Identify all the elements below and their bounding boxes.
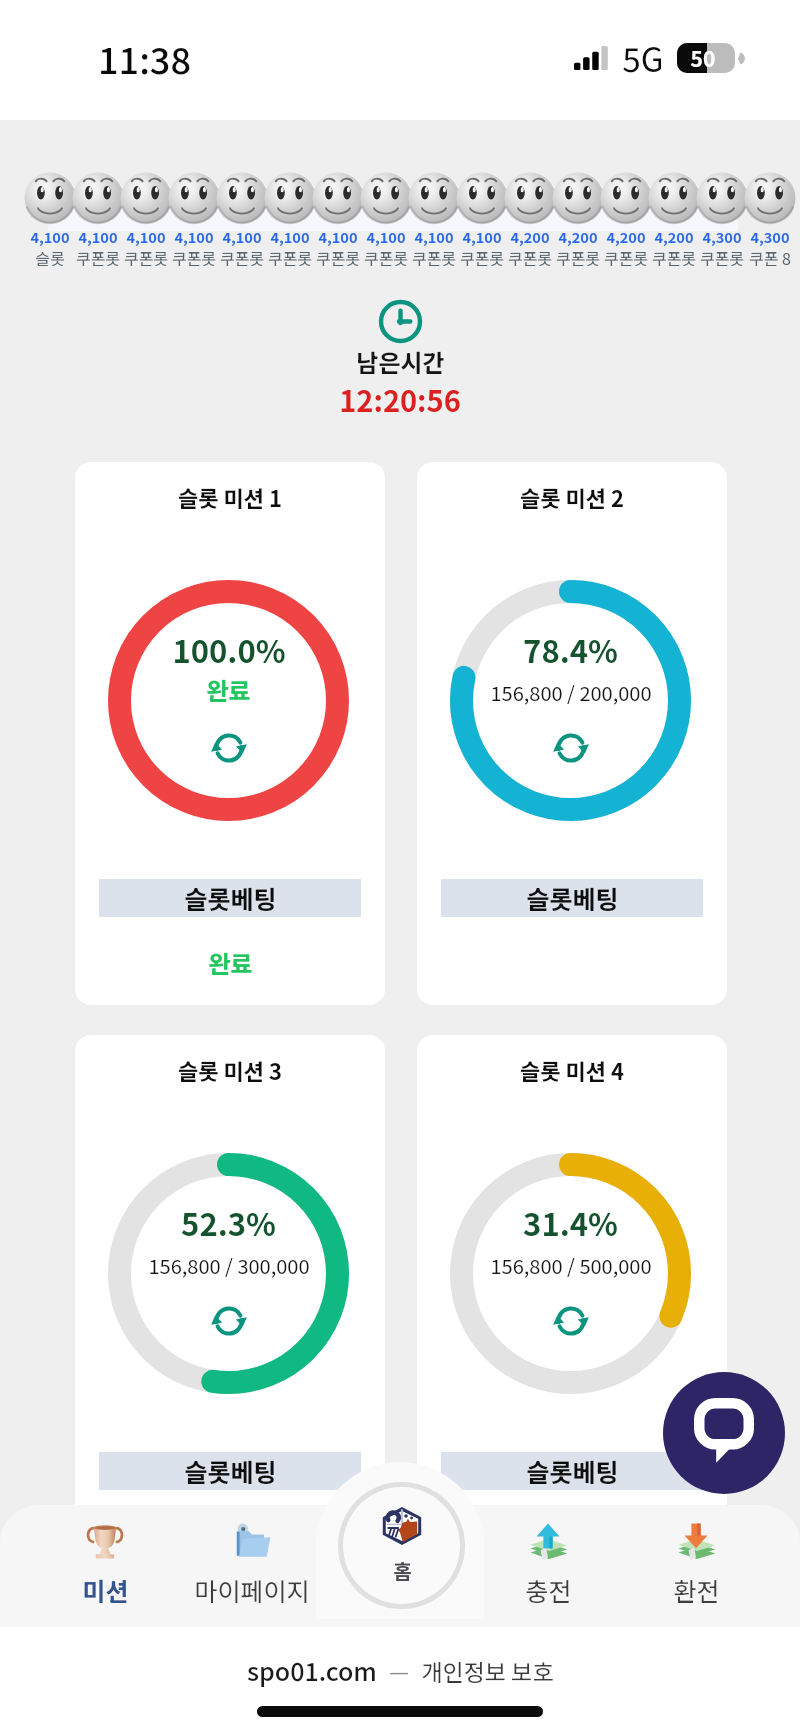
staticText: 쿠폰롯 bbox=[202, 246, 282, 269]
staticText: 31.4% bbox=[523, 1200, 618, 1245]
button[interactable]: 슬롯베팅 bbox=[441, 879, 703, 917]
button[interactable]: Refresh bbox=[550, 727, 592, 769]
staticText: 쿠폰롯 bbox=[490, 246, 570, 269]
staticText: 4,100 bbox=[250, 226, 330, 247]
staticText: 완료 bbox=[208, 945, 253, 980]
staticText: 156,800 / 200,000 bbox=[490, 678, 652, 707]
staticText: 충전 bbox=[525, 1572, 572, 1608]
staticText: 슬롯 bbox=[10, 246, 90, 269]
button[interactable]: Open chat bbox=[663, 1372, 785, 1494]
button[interactable]: 슬롯베팅 bbox=[99, 1452, 361, 1490]
staticText: 4,300 bbox=[682, 226, 762, 247]
button[interactable]: 미션 bbox=[35, 1518, 175, 1608]
staticText: 4,100 bbox=[442, 226, 522, 247]
staticText: 쿠폰롯 bbox=[250, 246, 330, 269]
button[interactable]: 홈 bbox=[316, 1462, 484, 1619]
staticText: 쿠폰롯 bbox=[442, 246, 522, 269]
staticText: 슬롯 미션 3 bbox=[178, 1054, 282, 1086]
staticText: 환전 bbox=[673, 1572, 720, 1608]
staticText: 쿠폰롯 bbox=[154, 246, 234, 269]
staticText: 156,800 / 300,000 bbox=[148, 1251, 310, 1280]
button[interactable]: 마이페이지 bbox=[182, 1518, 322, 1608]
staticText: 4,100 bbox=[10, 226, 90, 247]
button[interactable]: 슬롯 미션 4 bbox=[417, 1035, 727, 1578]
button[interactable]: Refresh bbox=[550, 1300, 592, 1342]
button[interactable]: 슬롯베팅 bbox=[99, 879, 361, 917]
staticText: 홈 bbox=[393, 1556, 412, 1585]
button[interactable]: 슬롯 미션 1 bbox=[75, 462, 385, 1005]
button[interactable]: 환전 bbox=[626, 1518, 766, 1608]
button[interactable]: Refresh bbox=[208, 1300, 250, 1342]
staticText: 4,100 bbox=[106, 226, 186, 247]
staticText: 슬롯 미션 2 bbox=[520, 481, 624, 513]
staticText: 12:20:56 bbox=[339, 378, 461, 420]
staticText: 남은시간 bbox=[356, 344, 445, 379]
staticText: 4,100 bbox=[202, 226, 282, 247]
staticText: 슬롯베팅 bbox=[184, 880, 277, 916]
staticText: 쿠폰롯 bbox=[106, 246, 186, 269]
staticText: 4,100 bbox=[346, 226, 426, 247]
staticText: 쿠폰롯 bbox=[586, 246, 666, 269]
button[interactable]: Refresh bbox=[208, 727, 250, 769]
staticText: 5G bbox=[622, 34, 664, 82]
staticText: 4,100 bbox=[154, 226, 234, 247]
staticText: 100.0% bbox=[172, 627, 286, 672]
staticText: 쿠폰 8 bbox=[730, 246, 800, 269]
staticText: 4,200 bbox=[490, 226, 570, 247]
staticText: 4,100 bbox=[298, 226, 378, 247]
staticText: 52.3% bbox=[181, 1200, 276, 1245]
staticText: 4,300 bbox=[730, 226, 800, 247]
staticText: 쿠폰롯 bbox=[538, 246, 618, 269]
staticText: 156,800 / 500,000 bbox=[490, 1251, 652, 1280]
button[interactable]: 충전 bbox=[478, 1518, 618, 1608]
staticText: 4,200 bbox=[586, 226, 666, 247]
staticText: spo01.com bbox=[247, 1652, 377, 1688]
staticText: 슬롯베팅 bbox=[526, 1453, 619, 1489]
button[interactable]: 슬롯베팅 bbox=[441, 1452, 703, 1490]
staticText: 쿠폰롯 bbox=[634, 246, 714, 269]
staticText: 슬롯 미션 4 bbox=[520, 1054, 624, 1086]
staticText: 50 bbox=[674, 43, 732, 73]
staticText: 슬롯 미션 1 bbox=[178, 481, 282, 513]
staticText: 슬롯베팅 bbox=[184, 1453, 277, 1489]
staticText: 슬롯베팅 bbox=[526, 880, 619, 916]
staticText: 미션 bbox=[82, 1572, 129, 1608]
staticText: 4,200 bbox=[538, 226, 618, 247]
staticText: 78.4% bbox=[523, 627, 618, 672]
staticText: 개인정보 보호 bbox=[421, 1654, 554, 1687]
staticText: 11:38 bbox=[98, 32, 191, 84]
staticText: 쿠폰롯 bbox=[394, 246, 474, 269]
staticText: 4,200 bbox=[634, 226, 714, 247]
staticText: 마이페이지 bbox=[194, 1572, 310, 1608]
button[interactable]: 슬롯 미션 3 bbox=[75, 1035, 385, 1578]
staticText: 쿠폰롯 bbox=[346, 246, 426, 269]
staticText: 쿠폰롯 bbox=[682, 246, 762, 269]
button[interactable]: 슬롯 미션 2 bbox=[417, 462, 727, 1005]
staticText: 완료 bbox=[206, 672, 251, 707]
staticText: 4,100 bbox=[394, 226, 474, 247]
staticText: 쿠폰롯 bbox=[58, 246, 138, 269]
staticText: 4,100 bbox=[58, 226, 138, 247]
staticText: 쿠폰롯 bbox=[298, 246, 378, 269]
staticText: — bbox=[389, 1654, 409, 1686]
